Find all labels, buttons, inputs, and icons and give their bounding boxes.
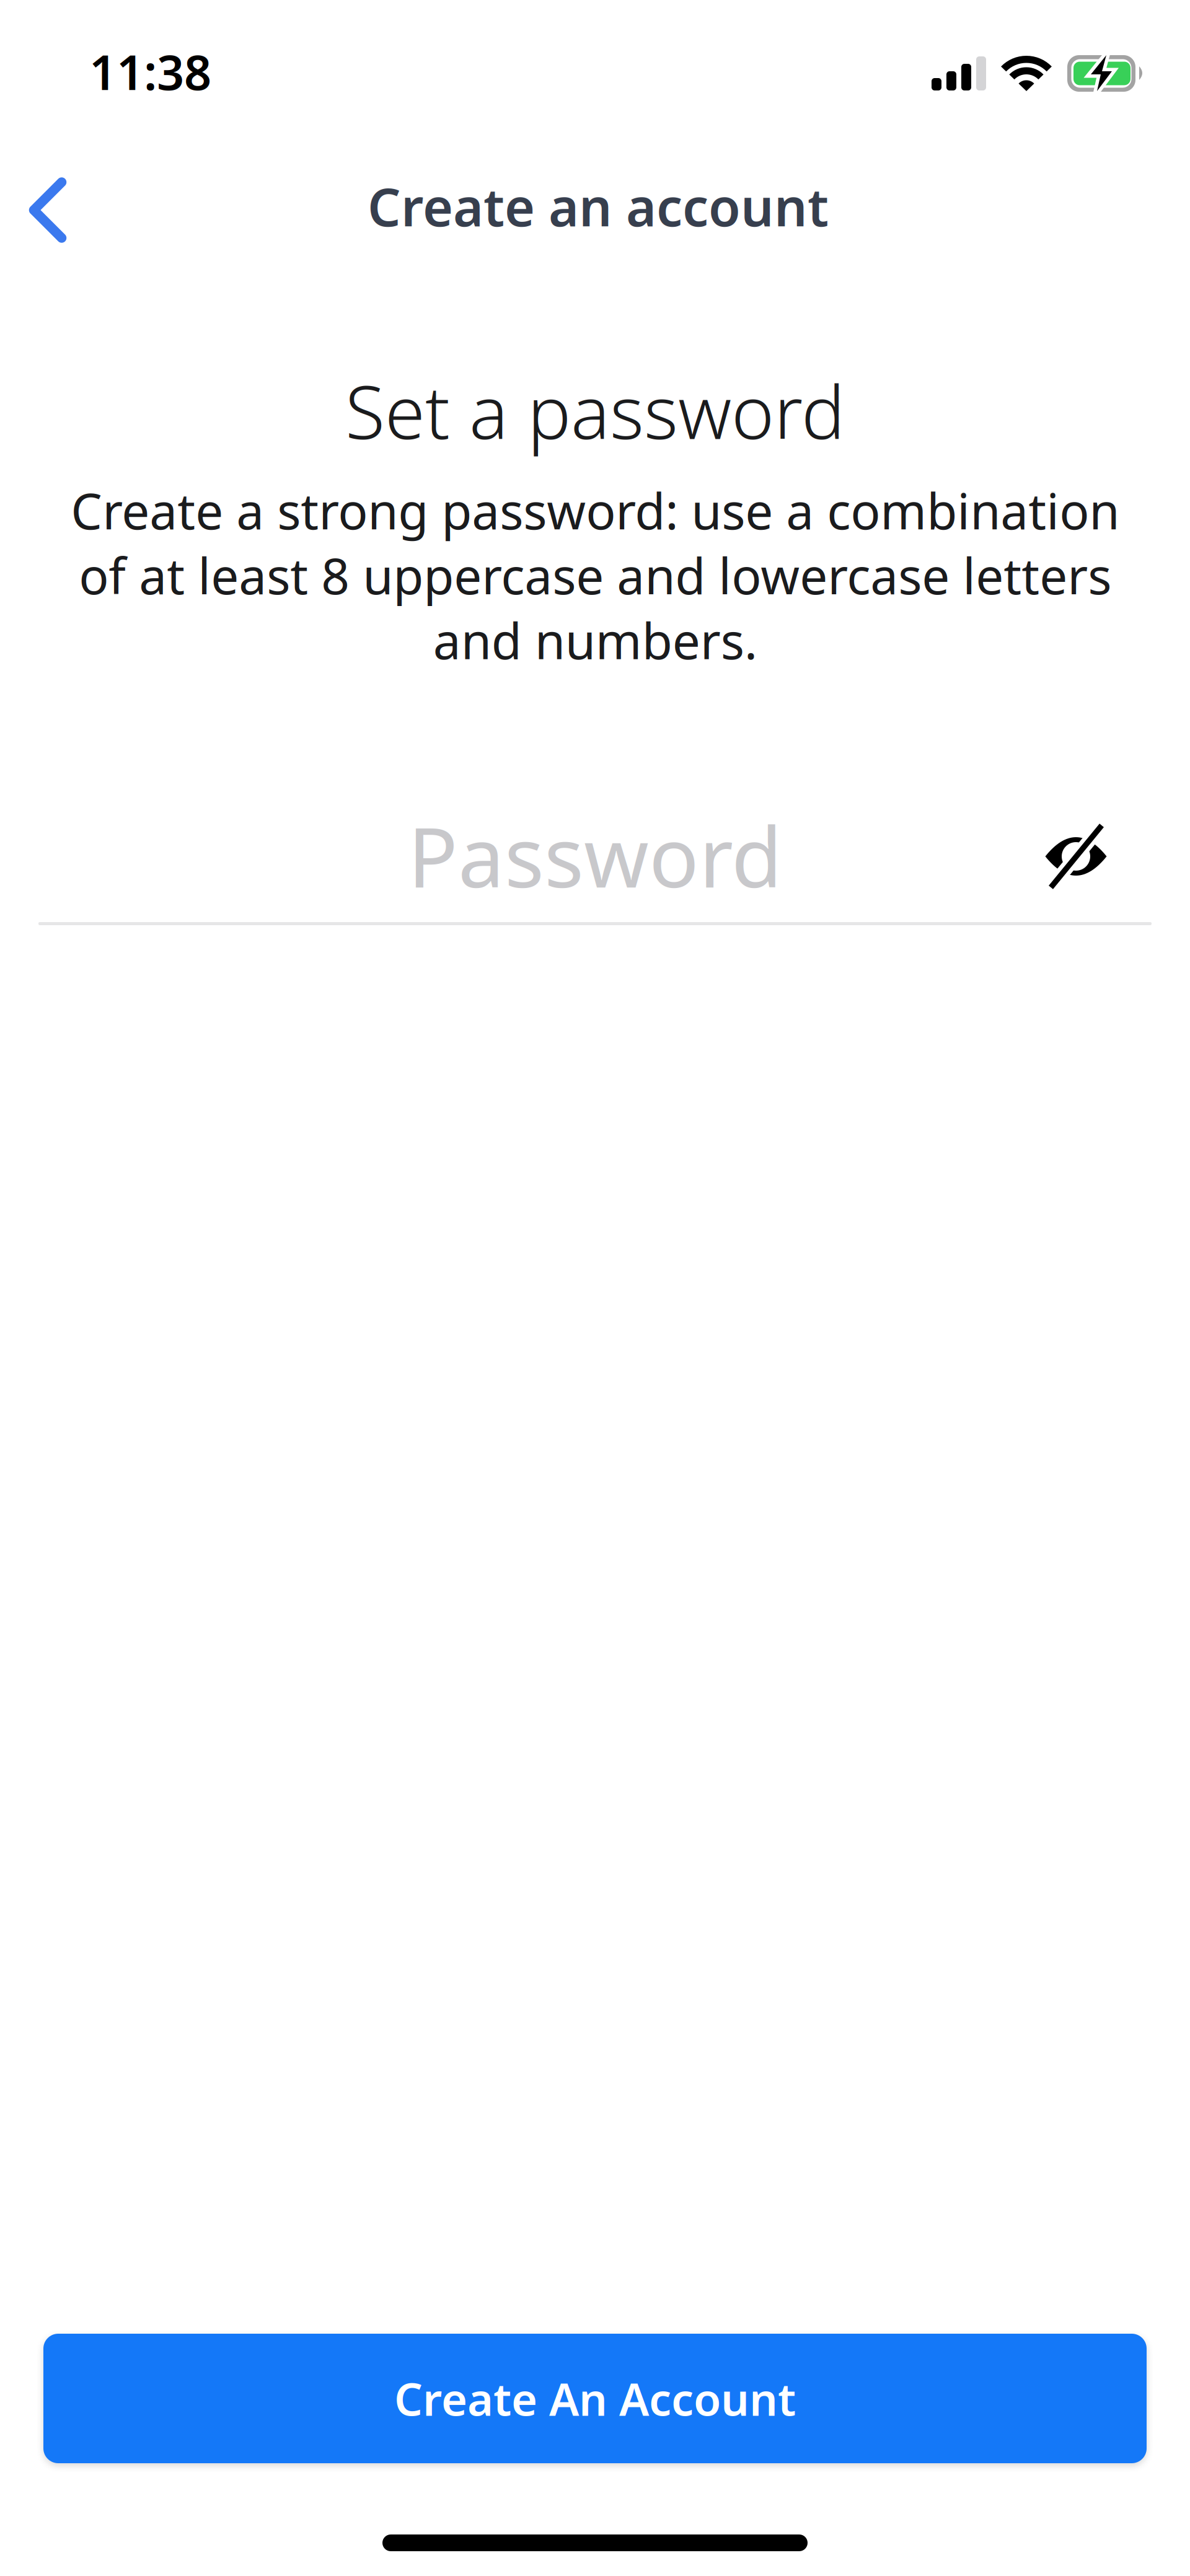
button[interactable]: Create An Account: [43, 2334, 1147, 2463]
staticText: Create An Account: [394, 2369, 796, 2428]
button[interactable]: Show password: [1029, 810, 1122, 903]
staticText: Create an account: [368, 172, 829, 241]
staticText: Create a strong password: use a combinat…: [71, 477, 1119, 673]
staticText: Set a password: [345, 363, 845, 459]
staticText: 11:38: [89, 40, 211, 103]
button[interactable]: Back: [1, 164, 94, 257]
staticText: Password: [408, 801, 782, 910]
